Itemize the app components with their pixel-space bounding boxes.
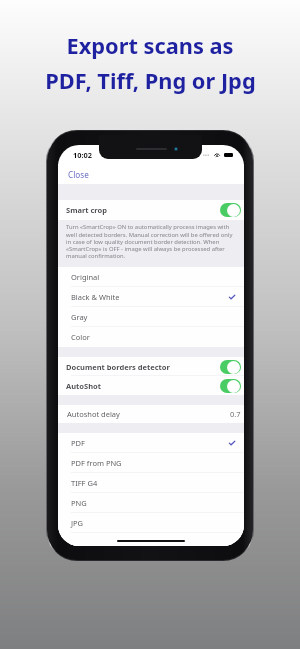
staticText: TIFF G4 — [71, 478, 98, 488]
staticText: Gray — [71, 312, 88, 322]
button[interactable]: Gray — [58, 307, 244, 327]
button[interactable]: Original — [58, 267, 244, 287]
button[interactable]: Color — [58, 327, 244, 347]
button[interactable]: Smart crop — [58, 200, 244, 220]
staticText: JPG — [71, 518, 84, 528]
staticText: Close — [68, 169, 89, 180]
button[interactable]: Black & White — [58, 287, 244, 307]
staticText: Smart crop — [66, 205, 107, 215]
staticText: Export scans as — [66, 31, 234, 61]
staticText: PNG — [71, 498, 87, 508]
staticText: PDF, Tiff, Png or Jpg — [45, 66, 256, 96]
button[interactable]: AutoShot — [58, 376, 244, 395]
button[interactable]: PNG — [58, 493, 244, 513]
button[interactable]: Autoshot delay — [58, 405, 244, 423]
button[interactable]: PDF — [58, 433, 244, 453]
staticText: AutoShot — [66, 381, 101, 391]
staticText: Turn «SmartCrop» ON to automatically pro… — [66, 223, 233, 259]
button[interactable]: Close — [58, 166, 95, 183]
staticText: Black & White — [71, 292, 120, 302]
button[interactable]: Toggle switch — [220, 379, 241, 393]
button[interactable]: Document borders detector — [58, 357, 244, 376]
button[interactable]: TIFF G4 — [58, 473, 244, 493]
staticText: Document borders detector — [66, 362, 170, 372]
staticText: 0.7 — [230, 409, 241, 419]
button[interactable]: Toggle switch — [220, 360, 241, 374]
staticText: Color — [71, 332, 90, 342]
staticText: PDF — [71, 438, 85, 448]
staticText: PDF from PNG — [71, 458, 122, 468]
staticText: 10:02 — [73, 150, 92, 160]
staticText: Autoshot delay — [67, 409, 120, 419]
button[interactable]: Toggle switch — [220, 203, 241, 217]
staticText: Original — [71, 272, 100, 282]
button[interactable]: PDF from PNG — [58, 453, 244, 473]
button[interactable]: JPG — [58, 513, 244, 533]
